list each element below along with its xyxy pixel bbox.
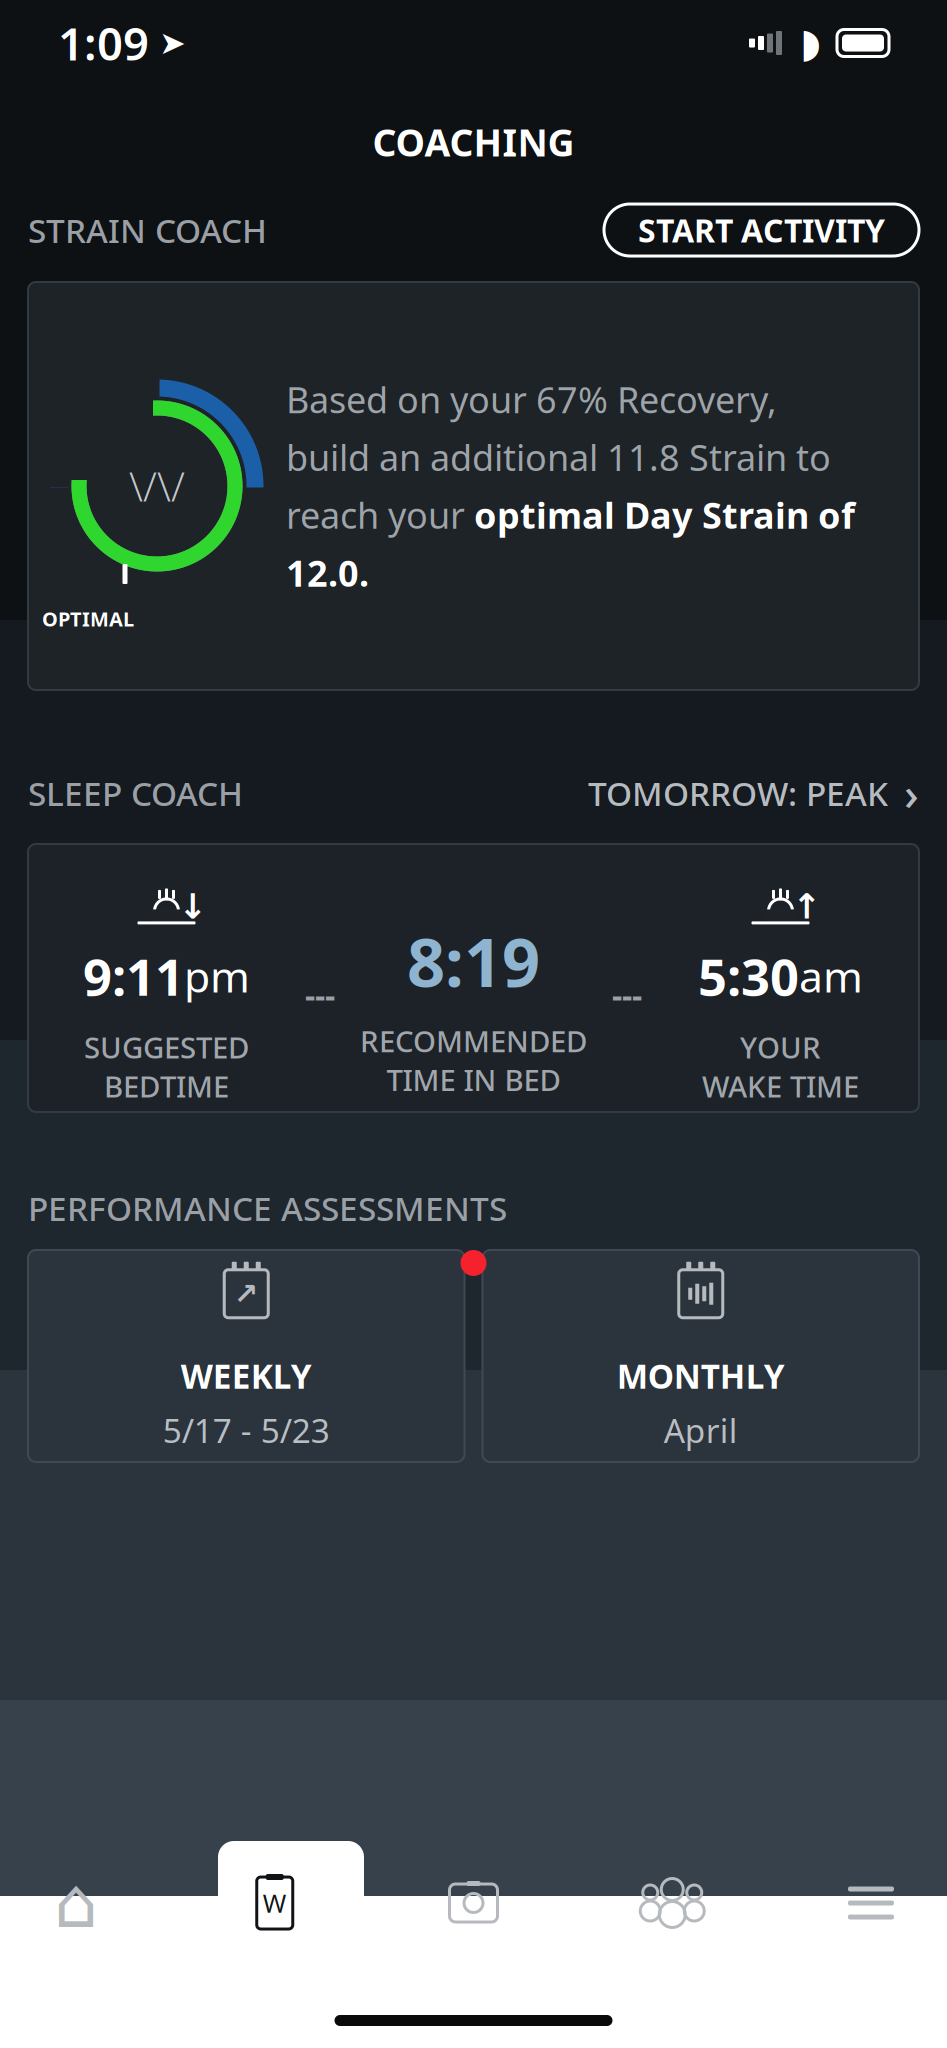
button[interactable]: SLEEP COACH xyxy=(0,770,947,816)
staticText: STRAIN COACH xyxy=(28,208,267,252)
staticText: TOMORROW: PEAK xyxy=(588,771,888,815)
staticText: 1:09 xyxy=(58,13,149,73)
button[interactable]: ↗ xyxy=(28,1250,464,1462)
button[interactable]: Overview xyxy=(36,1872,116,1934)
staticText: 5:30 xyxy=(698,942,799,1010)
staticText: optimal Day Strain of xyxy=(474,491,855,539)
staticText: › xyxy=(904,763,919,823)
staticText: PERFORMANCE ASSESSMENTS xyxy=(28,1186,507,1230)
button[interactable]: Teams xyxy=(632,1872,712,1934)
staticText: 5/17 - 5/23 xyxy=(163,1408,330,1452)
button[interactable]: Camera xyxy=(433,1872,513,1934)
button[interactable]: Menu xyxy=(831,1872,911,1934)
staticText: ↑ xyxy=(792,887,821,926)
staticText: \/\/ xyxy=(129,459,185,512)
staticText: OPTIMAL xyxy=(42,605,134,632)
staticText: reach your xyxy=(286,491,474,539)
staticText: --- xyxy=(305,974,335,1016)
staticText: ⌂ xyxy=(54,1864,98,1942)
staticText: 8:19 xyxy=(407,917,540,1005)
staticText: April xyxy=(664,1408,738,1452)
button[interactable]: Coaching xyxy=(235,1872,315,1934)
staticText: 9:11 xyxy=(83,942,184,1010)
staticText: ◗ xyxy=(800,20,821,66)
staticText: ↓ xyxy=(178,887,207,926)
staticText: RECOMMENDED xyxy=(360,1021,587,1060)
staticText: START ACTIVITY xyxy=(638,209,885,251)
staticText: MONTHLY xyxy=(617,1354,785,1398)
staticText: TIME IN BED xyxy=(386,1060,560,1099)
staticText: BEDTIME xyxy=(104,1067,229,1106)
button[interactable]: START ACTIVITY xyxy=(604,204,919,256)
staticText: ➤ xyxy=(159,25,186,61)
staticText: build an additional 11.8 Strain to xyxy=(286,433,831,481)
staticText: WAKE TIME xyxy=(702,1067,859,1106)
staticText: W xyxy=(263,1886,287,1920)
staticText: ↗ xyxy=(234,1277,259,1310)
staticText: SUGGESTED xyxy=(84,1028,249,1067)
staticText: --- xyxy=(612,974,642,1016)
staticText: Based on your 67% Recovery, xyxy=(286,375,777,423)
staticText: SLEEP COACH xyxy=(28,771,243,815)
button[interactable]: MONTHLY xyxy=(482,1250,919,1462)
staticText: COACHING xyxy=(372,117,574,167)
staticText: pm xyxy=(184,948,250,1004)
staticText: YOUR xyxy=(740,1028,821,1067)
staticText: 12.0. xyxy=(286,549,369,597)
staticText: WEEKLY xyxy=(181,1354,312,1398)
staticText: am xyxy=(799,948,863,1004)
